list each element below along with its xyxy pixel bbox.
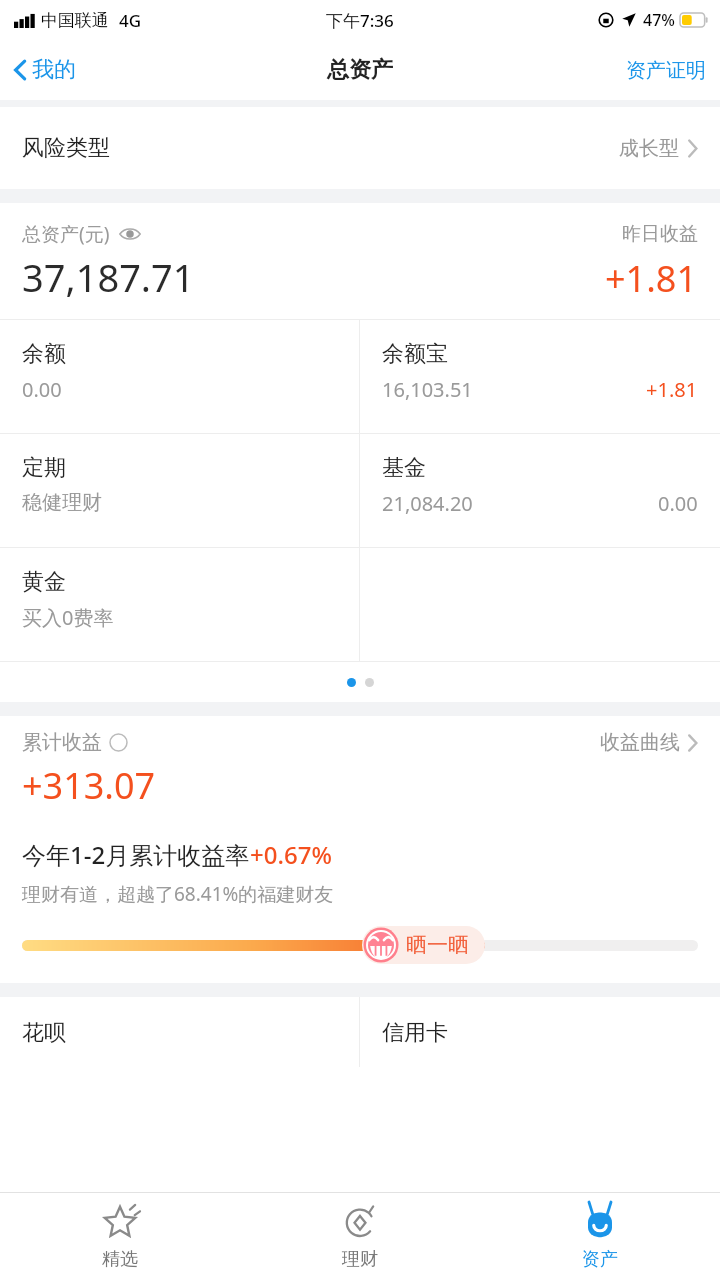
staticText: 花呗 <box>22 1019 66 1047</box>
staticText: 今年1-2月累计收益率 <box>22 838 250 871</box>
staticText: 信用卡 <box>382 1019 448 1047</box>
staticText: 总资产(元) <box>22 221 110 247</box>
button[interactable]: 定期 <box>0 434 359 547</box>
button[interactable]: 资产 <box>480 1193 720 1280</box>
staticText: +1.81 <box>646 376 698 403</box>
button[interactable]: 基金 <box>360 434 720 547</box>
button[interactable]: 资产证明 <box>616 52 720 89</box>
staticText: 定期 <box>22 454 66 482</box>
staticText: 理财 <box>342 1248 378 1271</box>
staticText: +1.81 <box>605 254 698 303</box>
staticText: 晒一晒 <box>406 932 469 958</box>
button[interactable]: 理财 <box>240 1193 480 1280</box>
button[interactable]: 信用卡 <box>360 997 720 1067</box>
staticText: 累计收益 <box>22 730 102 755</box>
staticText: 黄金 <box>22 568 66 596</box>
button[interactable]: 晒一晒 <box>362 926 485 964</box>
staticText: 总资产 <box>327 56 393 84</box>
button[interactable]: 精选 <box>0 1193 240 1280</box>
staticText: 昨日收益 <box>622 222 698 246</box>
button[interactable]: 余额 <box>0 320 359 433</box>
staticText: +313.07 <box>22 761 156 810</box>
staticText: 资产 <box>582 1248 618 1271</box>
staticText: 21,084.20 <box>382 490 473 517</box>
staticText: 理财有道，超越了68.41%的福建财友 <box>22 881 334 907</box>
button[interactable]: 黄金 <box>0 548 359 661</box>
staticText: 稳健理财 <box>22 490 102 515</box>
staticText: 下午7:36 <box>326 9 394 32</box>
staticText: 47% <box>643 9 675 31</box>
staticText: 买入0费率 <box>22 604 114 631</box>
staticText: 精选 <box>102 1248 138 1271</box>
staticText: 资产证明 <box>626 58 706 83</box>
staticText: 0.00 <box>658 490 698 517</box>
button[interactable]: 我的 <box>0 50 86 90</box>
staticText: 0.00 <box>22 376 62 403</box>
staticText: 4G <box>119 9 142 32</box>
staticText: 16,103.51 <box>382 376 473 403</box>
button[interactable]: 余额宝 <box>360 320 720 433</box>
staticText: 收益曲线 <box>600 730 680 755</box>
staticText: +0.67% <box>250 838 332 871</box>
button[interactable]: Toggle balance visibility <box>119 223 141 245</box>
staticText: 37,187.71 <box>22 251 195 303</box>
staticText: 余额宝 <box>382 340 448 368</box>
staticText: 余额 <box>22 340 66 368</box>
button[interactable]: 累计收益 <box>0 716 720 824</box>
button[interactable]: 花呗 <box>0 997 359 1067</box>
button[interactable]: 风险类型 <box>0 107 720 189</box>
staticText: 中国联通 <box>41 10 109 31</box>
staticText: 基金 <box>382 454 426 482</box>
staticText: 成长型 <box>619 136 679 161</box>
staticText: 风险类型 <box>22 134 110 162</box>
staticText: 我的 <box>32 56 76 84</box>
